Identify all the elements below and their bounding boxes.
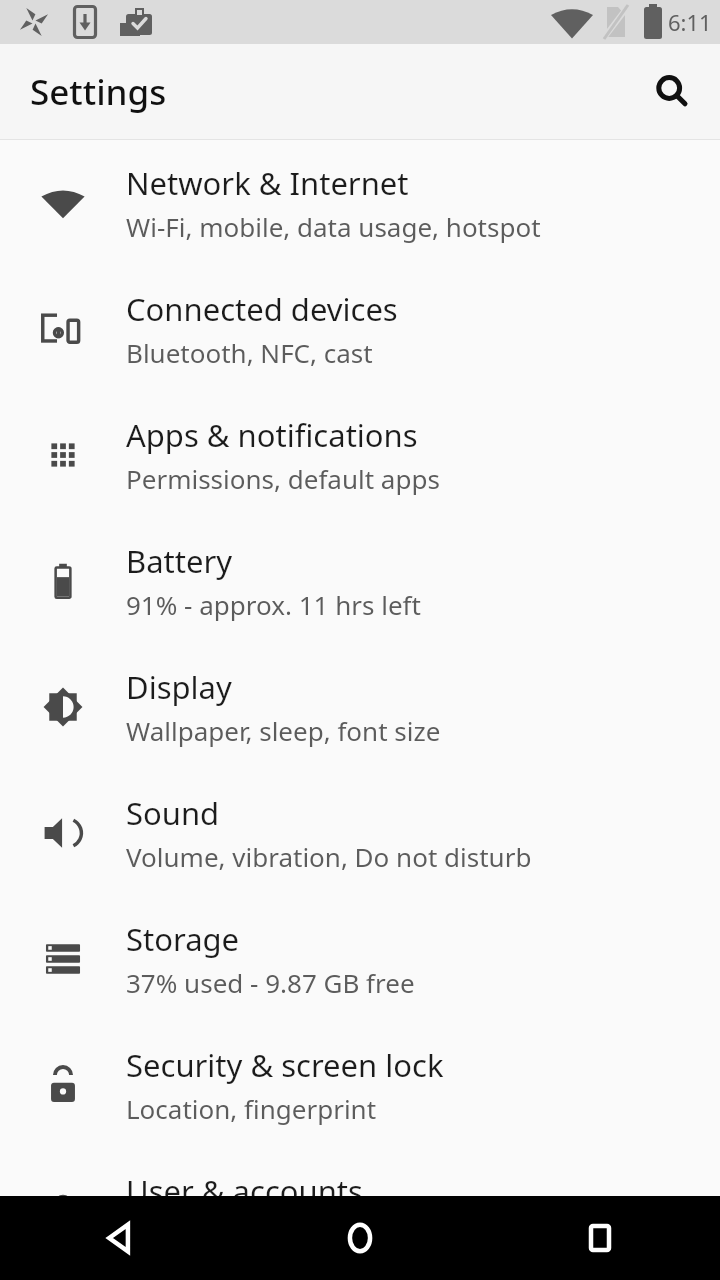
staticText: 91% - approx. 11 hrs left [126, 587, 421, 622]
staticText: Sound [126, 792, 220, 834]
button[interactable]: Sound [0, 770, 720, 896]
staticText: Bluetooth, NFC, cast [126, 335, 373, 370]
button[interactable]: User & accounts [0, 1148, 720, 1274]
staticText: Connected devices [126, 288, 398, 330]
staticText: Wi-Fi, mobile, data usage, hotspot [126, 209, 541, 244]
staticText: User & accounts [126, 1170, 363, 1212]
staticText: Location, fingerprint [126, 1091, 377, 1126]
staticText: Settings [30, 68, 167, 116]
button[interactable]: Recent apps [480, 1196, 720, 1280]
staticText: Network & Internet [126, 162, 409, 204]
button[interactable]: Battery [0, 518, 720, 644]
button[interactable]: Apps & notifications [0, 392, 720, 518]
button[interactable]: Security & screen lock [0, 1022, 720, 1148]
staticText: 37% used - 9.87 GB free [126, 965, 415, 1000]
button[interactable]: Connected devices [0, 266, 720, 392]
staticText: Wallpaper, sleep, font size [126, 713, 441, 748]
staticText: Apps & notifications [126, 414, 418, 456]
staticText: Storage [126, 918, 240, 960]
staticText: Display [126, 666, 232, 708]
staticText: Permissions, default apps [126, 461, 440, 496]
button[interactable]: Display [0, 644, 720, 770]
button[interactable]: Search settings [642, 62, 702, 122]
staticText: Volume, vibration, Do not disturb [126, 839, 532, 874]
button[interactable]: Back [0, 1196, 240, 1280]
staticText: 6:11 [668, 7, 712, 37]
staticText: Battery [126, 540, 233, 582]
staticText: Current user, Owner [126, 1217, 373, 1252]
button[interactable]: Storage [0, 896, 720, 1022]
staticText: Security & screen lock [126, 1044, 444, 1086]
button[interactable]: Network & Internet [0, 140, 720, 266]
button[interactable]: Home [240, 1196, 480, 1280]
